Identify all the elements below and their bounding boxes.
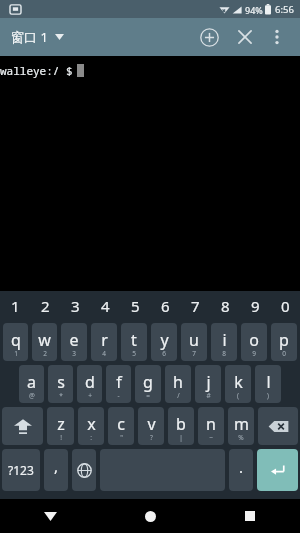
button[interactable]: d — [77, 365, 102, 403]
button[interactable]: k — [225, 365, 251, 403]
button[interactable]: f — [106, 365, 131, 403]
button[interactable]: o — [241, 323, 267, 361]
staticText: g — [143, 371, 153, 393]
staticText: t — [131, 329, 137, 351]
staticText: ) — [267, 391, 269, 400]
staticText: 9 — [252, 349, 256, 358]
staticText: j — [206, 371, 211, 393]
button[interactable]: z — [47, 407, 74, 445]
staticText: walleye:/ $ — [0, 63, 73, 78]
staticText: 3 — [72, 349, 76, 358]
staticText: 3 — [71, 296, 80, 316]
staticText: / — [177, 391, 180, 400]
button[interactable]: m — [228, 407, 254, 445]
button[interactable]: e — [61, 323, 87, 361]
button[interactable]: Period — [229, 449, 253, 491]
staticText: " — [120, 433, 123, 442]
staticText: 5 — [131, 296, 140, 316]
button[interactable]: w — [32, 323, 57, 361]
staticText: ( — [237, 391, 239, 400]
button[interactable]: New window — [191, 19, 227, 55]
button[interactable]: r — [91, 323, 117, 361]
button[interactable]: 5 — [120, 291, 150, 321]
button[interactable]: b — [168, 407, 194, 445]
staticText: l — [266, 371, 271, 393]
staticText: * — [59, 391, 63, 400]
button[interactable]: q — [3, 323, 28, 361]
staticText: ?123 — [8, 462, 34, 478]
staticText: ~ — [209, 433, 213, 442]
button[interactable]: l — [255, 365, 281, 403]
button[interactable]: Recents — [200, 499, 300, 533]
button[interactable]: t — [121, 323, 147, 361]
staticText: r — [101, 329, 108, 351]
button[interactable]: 7 — [180, 291, 210, 321]
staticText: s — [57, 371, 65, 393]
button[interactable]: Hide keyboard — [0, 499, 100, 533]
staticText: f — [116, 371, 122, 393]
staticText: x — [87, 413, 96, 435]
button[interactable]: i — [211, 323, 237, 361]
button[interactable]: 8 — [210, 291, 240, 321]
staticText: h — [173, 371, 183, 393]
staticText: n — [206, 413, 216, 435]
button[interactable]: j — [195, 365, 221, 403]
button[interactable]: 窗口 1 — [0, 20, 72, 54]
button[interactable]: Backspace — [258, 407, 298, 445]
staticText: | — [179, 433, 183, 442]
button[interactable]: walleye:/ $ — [0, 56, 300, 291]
button[interactable]: More options — [263, 23, 291, 51]
button[interactable]: a — [19, 365, 44, 403]
staticText: b — [176, 413, 186, 435]
button[interactable]: Comma — [44, 449, 68, 491]
staticText: d — [85, 371, 95, 393]
button[interactable]: p — [271, 323, 297, 361]
button[interactable]: Close — [227, 19, 263, 55]
button[interactable]: h — [165, 365, 191, 403]
staticText: + — [88, 391, 92, 400]
staticText: 1 — [14, 349, 18, 358]
button[interactable]: v — [138, 407, 164, 445]
staticText: 8 — [221, 296, 230, 316]
staticText: w — [38, 329, 51, 351]
button[interactable]: 4 — [90, 291, 120, 321]
staticText: c — [117, 413, 125, 435]
button[interactable]: Change language — [72, 449, 96, 491]
button[interactable]: Home — [100, 499, 200, 533]
button[interactable]: 0 — [270, 291, 300, 321]
staticText: 6:56 — [275, 3, 294, 16]
staticText: v — [147, 413, 156, 435]
button[interactable]: Enter — [257, 449, 298, 491]
button[interactable]: 2 — [30, 291, 60, 321]
staticText: k — [234, 371, 243, 393]
button[interactable]: Symbols — [2, 449, 40, 491]
button[interactable]: u — [181, 323, 207, 361]
button[interactable]: 9 — [240, 291, 270, 321]
staticText: m — [234, 413, 249, 435]
button[interactable]: 3 — [60, 291, 90, 321]
staticText: 5 — [132, 349, 136, 358]
staticText: 6 — [162, 349, 166, 358]
button[interactable]: 6 — [150, 291, 180, 321]
staticText: : — [90, 433, 92, 442]
staticText: = — [146, 391, 150, 400]
staticText: a — [27, 371, 36, 393]
button[interactable]: Shift — [2, 407, 43, 445]
staticText: 2 — [43, 349, 47, 358]
button[interactable]: 1 — [0, 291, 30, 321]
button[interactable]: n — [198, 407, 224, 445]
button[interactable]: y — [151, 323, 177, 361]
staticText: i — [222, 329, 227, 351]
staticText: @ — [29, 391, 35, 400]
staticText: u — [189, 329, 199, 351]
staticText: 1 — [11, 296, 20, 316]
button[interactable]: g — [135, 365, 161, 403]
staticText: p — [279, 329, 289, 351]
button[interactable]: c — [108, 407, 134, 445]
button[interactable]: s — [48, 365, 73, 403]
staticText: ! — [60, 433, 62, 442]
button[interactable]: x — [78, 407, 104, 445]
staticText: # — [206, 391, 211, 400]
staticText: 2 — [41, 296, 50, 316]
